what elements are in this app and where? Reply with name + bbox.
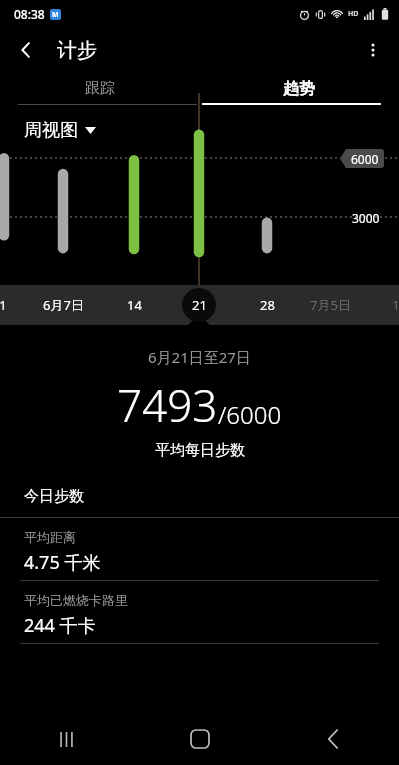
staticText: 趋势 xyxy=(283,79,315,99)
button[interactable]: 平均已燃烧卡路里 xyxy=(0,581,399,643)
staticText: /6000 xyxy=(218,398,282,431)
staticText: 6月7日 xyxy=(43,296,84,314)
staticText: 今日步数 xyxy=(24,487,84,506)
staticText: HD xyxy=(348,9,359,19)
staticText: 6000 xyxy=(351,151,379,167)
staticText: 244 千卡 xyxy=(24,613,96,638)
button[interactable]: 平均距离 xyxy=(0,518,399,580)
button[interactable]: Recents xyxy=(0,713,133,765)
button[interactable]: Back xyxy=(266,713,399,765)
staticText: 21 xyxy=(192,296,207,314)
button[interactable]: 周视图 xyxy=(24,119,96,142)
button[interactable]: More options xyxy=(355,32,391,68)
button[interactable]: 趋势 xyxy=(199,72,399,105)
staticText: 08:38 xyxy=(14,6,45,22)
staticText: 平均每日步数 xyxy=(155,441,245,460)
button[interactable]: 7月5日 xyxy=(300,285,360,325)
button[interactable]: 21 xyxy=(169,285,229,325)
staticText: 28 xyxy=(260,296,275,314)
staticText: 14 xyxy=(127,296,142,314)
staticText: 计步 xyxy=(57,38,97,63)
staticText: 1 xyxy=(0,296,7,314)
staticText: 4.75 千米 xyxy=(24,550,101,575)
staticText: 7493 xyxy=(117,375,218,435)
staticText: 1 xyxy=(392,296,399,314)
button[interactable]: Back xyxy=(8,32,44,68)
staticText: 3000 xyxy=(352,210,380,226)
staticText: 跟踪 xyxy=(85,79,115,98)
button[interactable]: 1 xyxy=(366,285,399,325)
button[interactable]: 6月7日 xyxy=(33,285,93,325)
button[interactable]: 1 xyxy=(0,285,33,325)
button[interactable]: 跟踪 xyxy=(0,72,199,105)
staticText: 平均距离 xyxy=(24,529,76,545)
staticText: 平均已燃烧卡路里 xyxy=(24,592,128,608)
staticText: 6月21日至27日 xyxy=(148,347,251,367)
button[interactable]: 28 xyxy=(237,285,297,325)
button[interactable]: Home xyxy=(133,713,266,765)
staticText: 7月5日 xyxy=(310,296,351,314)
staticText: M xyxy=(52,10,59,20)
staticText: 周视图 xyxy=(24,119,78,142)
button[interactable]: 14 xyxy=(104,285,164,325)
